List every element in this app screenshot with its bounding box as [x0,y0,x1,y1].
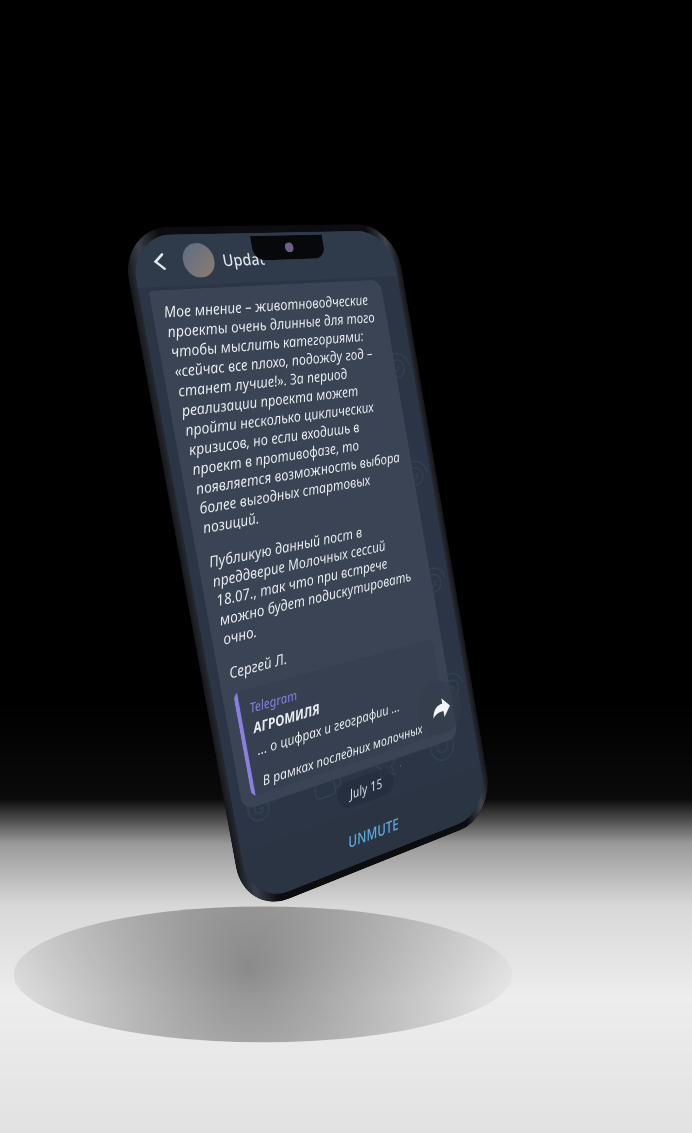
button[interactable]: Мое мнение – животноводческие проекты оч… [148,279,458,811]
staticText: Мое мнение – животноводческие проекты оч… [162,289,409,538]
button[interactable]: UNMUTE [241,766,488,906]
button[interactable]: Telegram [233,639,448,797]
staticText: … о цифрах и географии … [255,697,401,759]
staticText: July 15 [348,774,384,803]
staticText: Сергей Л. [227,647,290,683]
button[interactable]: Share [414,675,465,741]
staticText: Публикую данный пост в преддверие Молочн… [207,512,426,649]
button[interactable]: Back [138,240,182,281]
staticText: Telegram [248,685,299,716]
staticText: АГРОМИЛЯ [251,699,322,738]
staticText: В рамках последних молочных сессий подни… [261,714,440,788]
staticText: UNMUTE [346,813,400,852]
staticText: Updat [220,247,267,271]
